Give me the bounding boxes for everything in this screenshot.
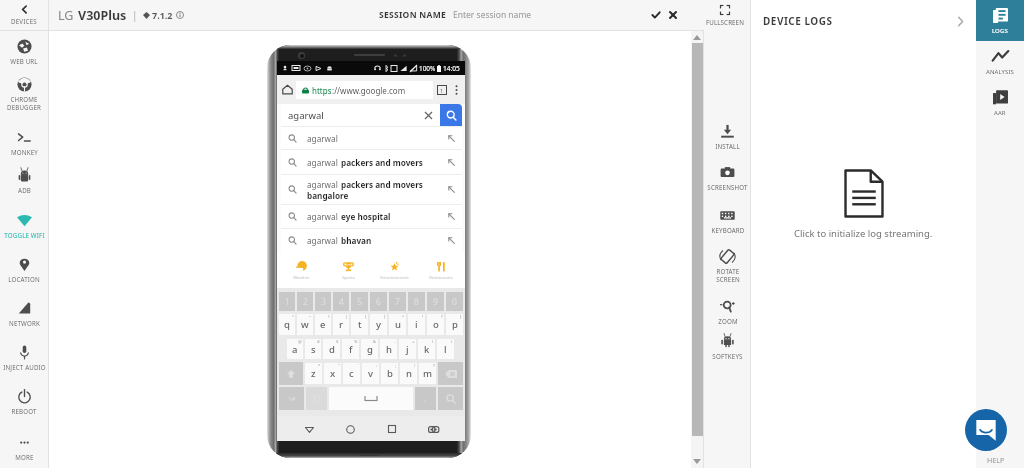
button[interactable]: FULLSCREEN <box>697 0 753 30</box>
button[interactable]: Home <box>341 420 359 438</box>
staticText: ' <box>358 363 359 369</box>
button[interactable]: Confirm <box>649 8 663 22</box>
button[interactable]: DEVICES <box>0 0 48 30</box>
staticText: Entertainment <box>380 275 409 281</box>
button[interactable]: b <box>381 363 398 384</box>
button[interactable]: agarwal <box>281 205 462 228</box>
staticText: 6 <box>376 296 381 308</box>
button[interactable]: Sports <box>326 252 370 288</box>
button[interactable]: NETWORK <box>0 301 48 327</box>
button[interactable]: SOFTKEYS <box>704 334 751 360</box>
staticText: i <box>415 318 418 331</box>
button[interactable]: LOGS <box>976 0 1024 41</box>
button[interactable]: CHROME DEBUGGER <box>0 77 48 112</box>
button[interactable]: 2 <box>297 292 313 311</box>
button[interactable]: c <box>343 363 360 384</box>
button[interactable]: o <box>427 314 444 335</box>
button[interactable]: Recents <box>383 420 401 438</box>
button[interactable]: Shift <box>279 362 303 385</box>
button[interactable]: Search <box>438 387 463 410</box>
staticText: { <box>365 314 367 320</box>
button[interactable]: p <box>446 314 463 335</box>
button[interactable]: WEB URL <box>0 39 48 65</box>
button[interactable]: SCREENSHOT <box>704 165 751 191</box>
button[interactable]: t <box>351 314 368 335</box>
button[interactable]: d <box>323 339 340 359</box>
button[interactable]: agarwal <box>281 229 462 252</box>
button[interactable]: Backspace <box>438 362 463 385</box>
button[interactable]: agarwal <box>281 127 462 149</box>
button[interactable]: MONKEY <box>0 130 48 156</box>
button[interactable]: u <box>389 314 406 335</box>
button[interactable]: MORE <box>0 435 48 461</box>
button[interactable]: y <box>370 314 387 335</box>
button[interactable]: 7 <box>389 292 406 311</box>
button[interactable]: a <box>287 339 303 359</box>
staticText: ! <box>422 314 424 320</box>
button[interactable]: Restaurants <box>419 252 463 288</box>
button[interactable]: ROTATE SCREEN <box>704 249 751 284</box>
button[interactable]: Back <box>300 420 318 438</box>
button[interactable]: e <box>315 314 331 335</box>
button[interactable]: INSTALL <box>704 124 751 150</box>
button[interactable]: TOGGLE WIFI <box>0 213 48 239</box>
button[interactable]: INJECT AUDIO <box>0 345 48 371</box>
button[interactable]: 3 <box>315 292 331 311</box>
button[interactable]: 5 <box>351 292 368 311</box>
button[interactable]: REBOOT <box>0 389 48 415</box>
button[interactable]: ANALYSIS <box>976 41 1024 82</box>
button[interactable]: Clear <box>421 108 435 122</box>
button[interactable]: Space <box>329 387 413 410</box>
button[interactable]: Menu <box>452 84 460 96</box>
button[interactable]: j <box>399 339 416 359</box>
staticText: ~ <box>309 314 312 320</box>
button[interactable]: q <box>279 314 295 335</box>
button[interactable]: DEVICE LOGS <box>763 0 967 42</box>
button[interactable]: Search <box>440 104 462 126</box>
button[interactable]: Click to initialize log streaming. <box>794 169 933 240</box>
button[interactable]: Weather <box>279 252 323 288</box>
button[interactable]: 4 <box>333 292 349 311</box>
button[interactable]: Split screen <box>424 420 442 438</box>
button[interactable]: Help <box>965 409 1007 451</box>
button[interactable]: w <box>297 314 313 335</box>
button[interactable]: g <box>361 339 378 359</box>
button[interactable]: l <box>437 339 454 359</box>
button[interactable]: f <box>342 339 359 359</box>
button[interactable]: n <box>400 363 417 384</box>
staticText: Sports <box>342 275 355 281</box>
button[interactable]: 6 <box>370 292 387 311</box>
button[interactable]: ZOOM <box>704 299 751 325</box>
button[interactable]: AAR <box>976 82 1024 123</box>
button[interactable]: i <box>408 314 425 335</box>
staticText: MORE <box>15 453 34 461</box>
staticText: # <box>317 339 320 345</box>
button[interactable]: m <box>419 363 436 384</box>
button[interactable]: agarwal <box>281 150 462 174</box>
button[interactable]: LOCATION <box>0 257 48 283</box>
button[interactable]: z <box>305 363 322 384</box>
staticText: ] <box>460 314 462 320</box>
button[interactable]: h <box>380 339 397 359</box>
button[interactable]: ADB <box>0 168 48 194</box>
button[interactable]: 8 <box>408 292 425 311</box>
button[interactable]: Tabs <box>437 85 447 95</box>
staticText: ° <box>292 314 294 320</box>
button[interactable]: s <box>305 339 321 359</box>
button[interactable]: v <box>362 363 379 384</box>
button[interactable]: x <box>324 363 341 384</box>
button[interactable]: k <box>418 339 435 359</box>
button[interactable]: Cancel <box>666 8 680 22</box>
button[interactable]: r <box>333 314 349 335</box>
button[interactable]: 0 <box>446 292 463 311</box>
button[interactable]: 9 <box>427 292 444 311</box>
button[interactable]: agarwal <box>281 175 462 204</box>
button[interactable]: KEYBOARD <box>704 208 751 234</box>
staticText: INJECT AUDIO <box>3 363 46 371</box>
button[interactable]: Entertainment <box>372 252 416 288</box>
